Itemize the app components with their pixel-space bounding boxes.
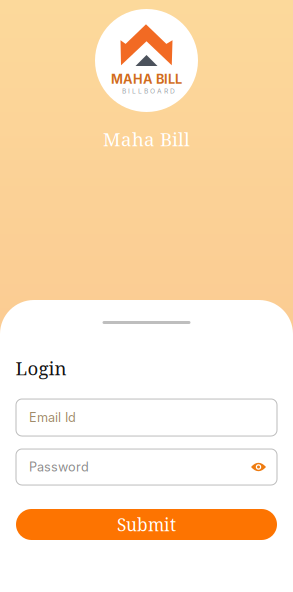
staticText: MAHA BILL xyxy=(111,71,182,87)
staticText: Submit xyxy=(117,513,176,536)
staticText: Email Id xyxy=(29,410,76,425)
staticText: Maha Bill xyxy=(103,126,190,152)
button[interactable]: Submit xyxy=(16,509,277,540)
staticText: B I L L B O A R D xyxy=(122,87,175,95)
button[interactable]: Password xyxy=(16,449,277,485)
staticText: Login xyxy=(15,355,66,381)
staticText: Password xyxy=(29,459,89,475)
button[interactable]: Email Id xyxy=(16,399,277,436)
